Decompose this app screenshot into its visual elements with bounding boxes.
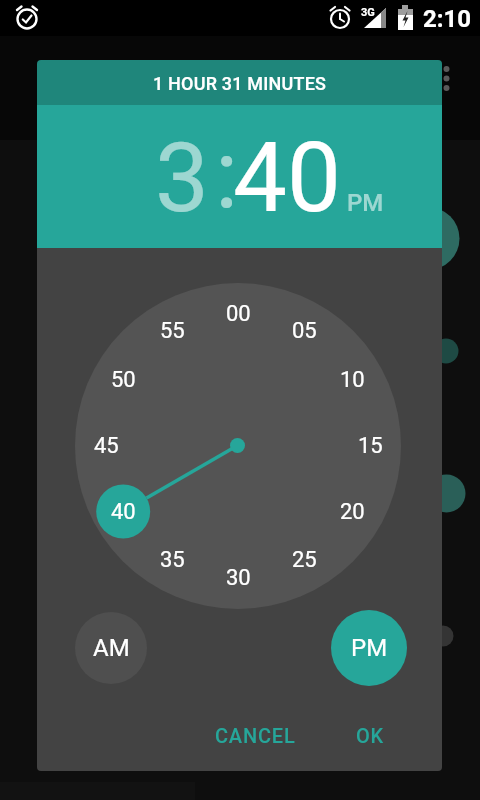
button[interactable]: 30 xyxy=(213,561,263,595)
staticText: 40 xyxy=(233,122,341,235)
button[interactable]: 20 xyxy=(327,495,377,529)
staticText: 45 xyxy=(94,433,119,459)
staticText: 50 xyxy=(111,367,136,393)
button[interactable]: 40 xyxy=(207,108,367,248)
staticText: 55 xyxy=(160,318,185,344)
staticText: 05 xyxy=(292,318,317,344)
button[interactable]: AM xyxy=(75,612,147,684)
staticText: : xyxy=(215,118,239,231)
button[interactable]: 3 xyxy=(117,108,247,248)
staticText: 25 xyxy=(292,547,317,573)
button[interactable]: OK xyxy=(330,711,410,759)
button[interactable]: 45 xyxy=(81,429,131,463)
button[interactable]: 00 xyxy=(213,297,263,331)
button[interactable]: 55 xyxy=(147,314,197,348)
staticText: 30 xyxy=(226,565,251,591)
staticText: PM xyxy=(347,189,384,217)
button[interactable]: 25 xyxy=(279,543,329,577)
staticText: 35 xyxy=(160,547,185,573)
staticText: 1 HOUR 31 MINUTES xyxy=(153,73,327,94)
staticText: 40 xyxy=(111,499,136,525)
staticText: 3G xyxy=(361,6,375,19)
staticText: 00 xyxy=(226,301,251,327)
button[interactable]: 40 xyxy=(98,495,148,529)
staticText: 10 xyxy=(340,367,365,393)
staticText: PM xyxy=(351,634,388,662)
button[interactable]: CANCEL xyxy=(195,711,315,759)
staticText: 3 xyxy=(155,122,209,235)
staticText: 15 xyxy=(358,433,383,459)
button[interactable]: 50 xyxy=(98,363,148,397)
button[interactable]: 10 xyxy=(327,363,377,397)
staticText: OK xyxy=(356,724,385,747)
staticText: 20 xyxy=(340,499,365,525)
button[interactable]: PM xyxy=(331,610,407,686)
staticText: AM xyxy=(93,634,130,662)
button[interactable]: 15 xyxy=(345,429,395,463)
staticText: 2:10 xyxy=(423,5,472,33)
staticText: CANCEL xyxy=(215,724,296,747)
button[interactable]: 05 xyxy=(279,314,329,348)
button[interactable]: 35 xyxy=(147,543,197,577)
